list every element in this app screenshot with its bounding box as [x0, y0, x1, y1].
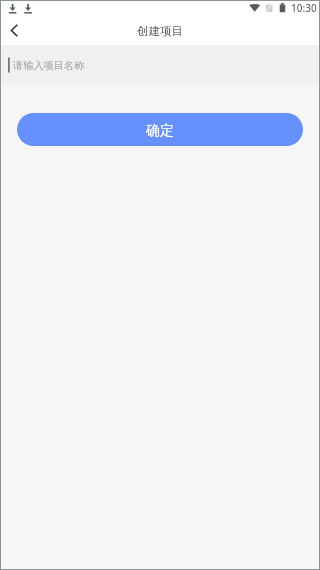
staticText: 确定 [146, 122, 174, 140]
staticText: 10:30 [291, 1, 317, 15]
staticText: 创建项目 [137, 24, 183, 38]
button[interactable]: 请输入项目名称 [0, 45, 320, 85]
button[interactable]: 确定 [17, 113, 303, 146]
staticText: 请输入项目名称 [13, 59, 85, 72]
button[interactable]: Back [0, 16, 29, 45]
